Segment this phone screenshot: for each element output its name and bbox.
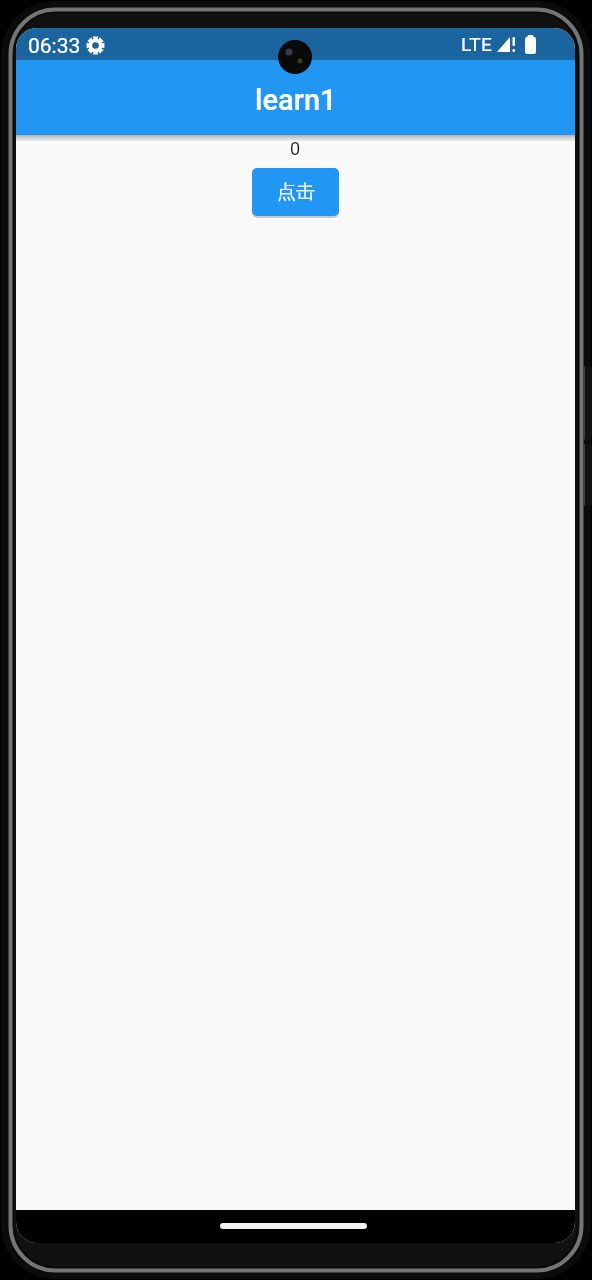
staticText: learn1	[255, 83, 337, 117]
staticText: 点击	[277, 180, 315, 204]
staticText: 06:33	[28, 34, 81, 59]
button[interactable]: 点击	[252, 168, 339, 216]
staticText: 0	[290, 138, 301, 159]
staticText: LTE	[461, 33, 493, 55]
